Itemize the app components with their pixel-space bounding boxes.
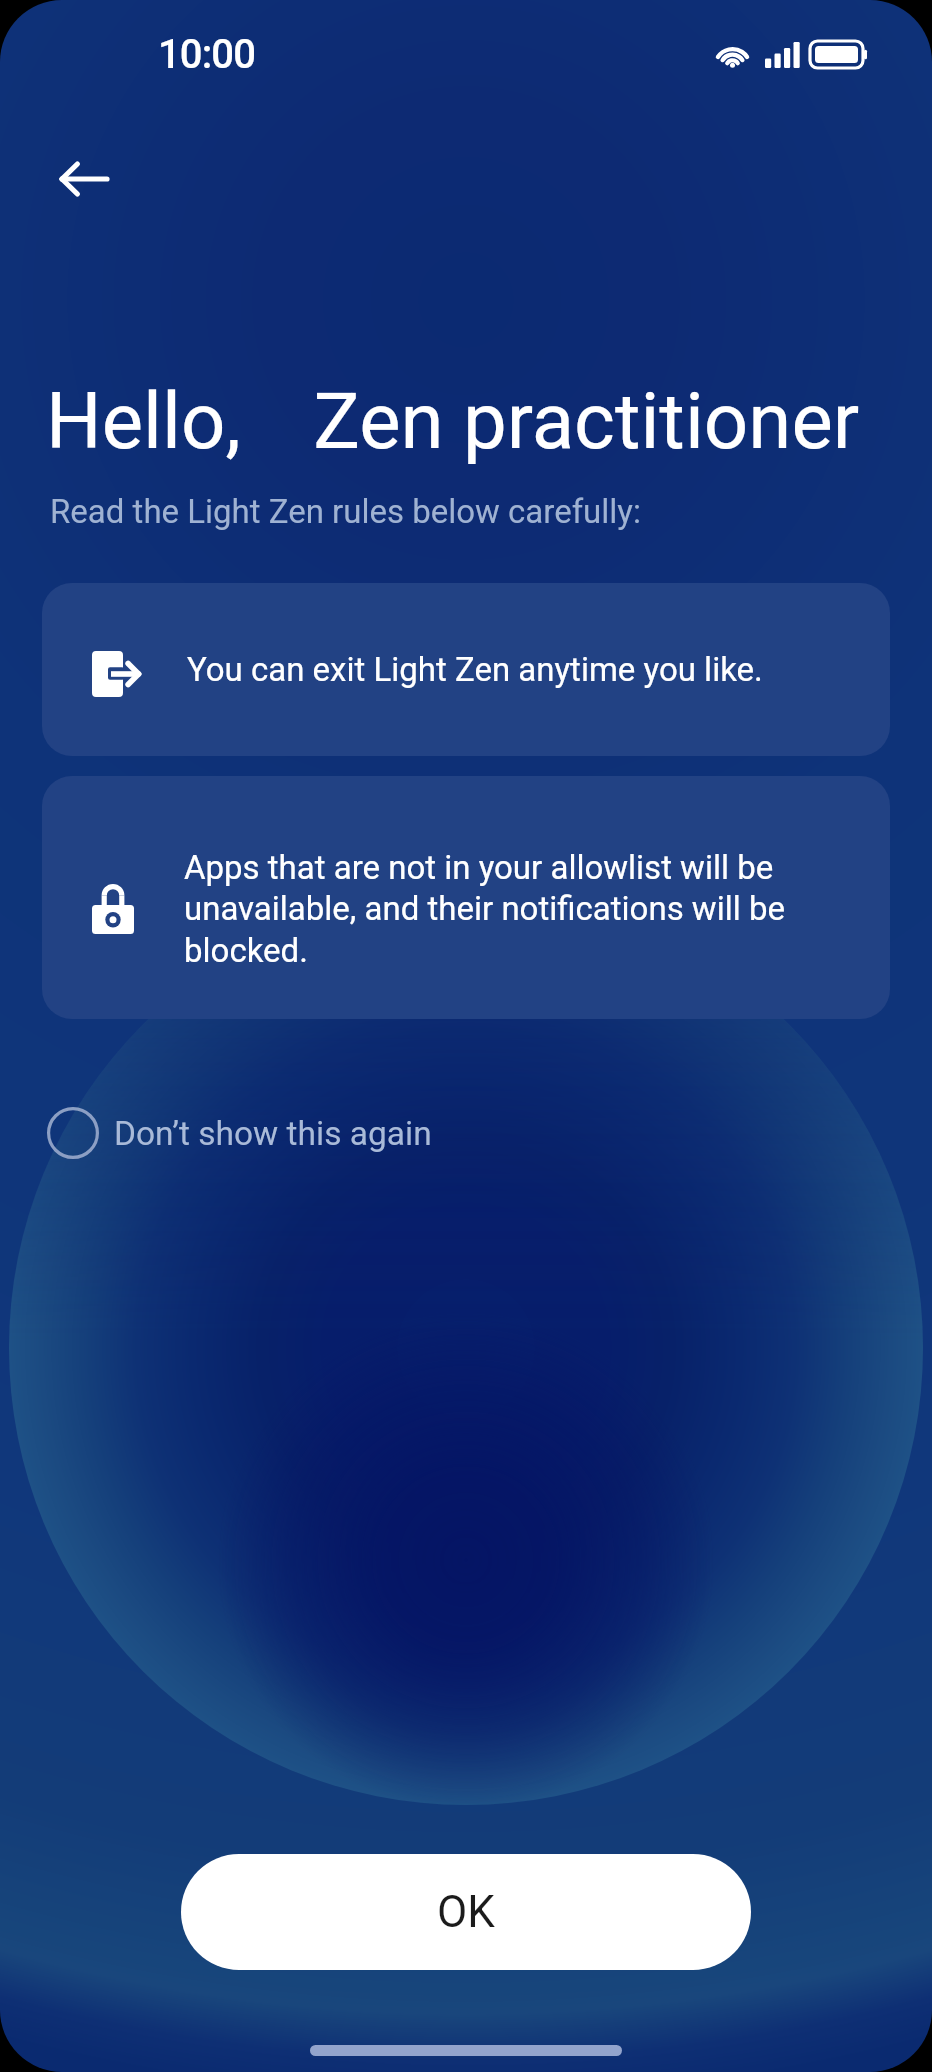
staticText: You can exit Light Zen anytime you like. bbox=[187, 650, 763, 689]
staticText: Apps that are not in your allowlist will… bbox=[184, 848, 850, 970]
button[interactable]: Don’t show this again bbox=[30, 1090, 452, 1176]
staticText: Don’t show this again bbox=[114, 1114, 432, 1153]
staticText: 10:00 bbox=[158, 31, 255, 78]
button[interactable]: OK bbox=[181, 1854, 751, 1970]
button[interactable]: Back bbox=[36, 155, 130, 203]
staticText: OK bbox=[437, 1886, 495, 1938]
button[interactable]: You can exit Light Zen anytime you like. bbox=[42, 583, 890, 756]
staticText: Hello, Zen practitioner bbox=[46, 376, 860, 467]
staticText: Read the Light Zen rules below carefully… bbox=[50, 492, 641, 531]
button[interactable]: Apps that are not in your allowlist will… bbox=[42, 776, 890, 1019]
